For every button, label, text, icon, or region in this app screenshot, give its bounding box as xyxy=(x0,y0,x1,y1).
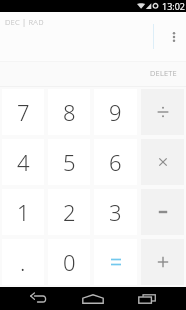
staticText: 4 xyxy=(17,147,30,177)
button[interactable]: Recent apps xyxy=(124,287,186,310)
button[interactable]: 3 xyxy=(94,189,137,235)
button[interactable]: 8 xyxy=(48,89,90,135)
button[interactable]: 7 xyxy=(2,89,44,135)
button[interactable]: Home xyxy=(62,287,124,310)
button[interactable]: Back xyxy=(0,287,62,310)
button[interactable]: 5 xyxy=(48,139,90,185)
button[interactable]: 4 xyxy=(2,139,44,185)
button[interactable]: More options xyxy=(162,25,186,49)
button[interactable]: Add xyxy=(141,239,184,285)
staticText: 8 xyxy=(63,97,76,127)
staticText: 13:02 xyxy=(162,0,186,12)
staticText: DELETE xyxy=(150,68,177,78)
staticText: 0 xyxy=(63,247,76,277)
button[interactable]: 1 xyxy=(2,189,44,235)
staticText: 7 xyxy=(17,97,30,127)
staticText: 9 xyxy=(109,97,122,127)
button[interactable]: 0 xyxy=(48,239,90,285)
button[interactable]: Subtract xyxy=(141,189,184,235)
button[interactable]: 6 xyxy=(94,139,137,185)
button[interactable]: 2 xyxy=(48,189,90,235)
staticText: 5 xyxy=(63,147,76,177)
button[interactable]: Divide xyxy=(141,89,184,135)
staticText: 3 xyxy=(109,197,122,227)
staticText: DEC | RAD xyxy=(5,17,44,27)
staticText: 6 xyxy=(109,147,122,177)
button[interactable]: 9 xyxy=(94,89,137,135)
button[interactable]: DELETE xyxy=(144,64,183,82)
staticText: 1 xyxy=(17,197,30,227)
staticText: . xyxy=(20,247,26,277)
button[interactable]: . xyxy=(2,239,44,285)
button[interactable]: Multiply xyxy=(141,139,184,185)
button[interactable]: Equals xyxy=(94,239,137,285)
staticText: 2 xyxy=(63,197,76,227)
